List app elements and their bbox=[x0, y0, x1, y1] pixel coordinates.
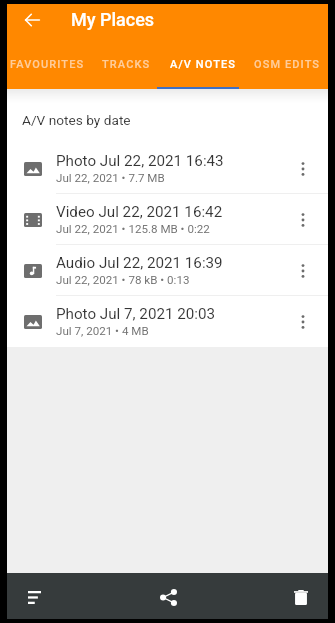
staticText: Jul 22, 2021 • 78 kB • 0:13 bbox=[56, 273, 190, 287]
button[interactable]: More options bbox=[277, 296, 328, 347]
button[interactable]: OSM EDITS bbox=[246, 58, 327, 88]
staticText: FAVOURITES bbox=[10, 58, 85, 71]
staticText: Jul 7, 2021 • 4 MB bbox=[56, 324, 149, 338]
staticText: Video Jul 22, 2021 16:42 bbox=[56, 203, 223, 221]
button[interactable]: More options bbox=[277, 143, 328, 194]
staticText: TRACKS bbox=[102, 58, 151, 71]
staticText: My Places bbox=[71, 9, 155, 30]
staticText: Photo Jul 22, 2021 16:43 bbox=[56, 152, 224, 170]
staticText: Photo Jul 7, 2021 20:03 bbox=[56, 305, 216, 323]
button[interactable]: More options bbox=[277, 245, 328, 296]
button[interactable]: TRACKS bbox=[94, 58, 162, 88]
button[interactable]: FAVOURITES bbox=[7, 58, 94, 88]
staticText: Jul 22, 2021 • 7.7 MB bbox=[56, 171, 165, 185]
button[interactable]: Sort bbox=[7, 576, 61, 619]
button[interactable]: Photo Jul 22, 2021 16:43 bbox=[7, 143, 328, 194]
staticText: Jul 22, 2021 • 125.8 MB • 0:22 bbox=[56, 222, 210, 236]
button[interactable]: Photo Jul 7, 2021 20:03 bbox=[7, 296, 328, 347]
button[interactable]: Video Jul 22, 2021 16:42 bbox=[7, 194, 328, 245]
button[interactable]: Share bbox=[141, 576, 195, 619]
staticText: A/V notes by date bbox=[22, 112, 131, 128]
staticText: A/V NOTES bbox=[170, 58, 237, 71]
button[interactable]: A/V NOTES bbox=[162, 58, 246, 88]
button[interactable]: Delete bbox=[274, 576, 328, 619]
button[interactable]: Back bbox=[17, 4, 48, 35]
staticText: Audio Jul 22, 2021 16:39 bbox=[56, 254, 223, 272]
button[interactable]: More options bbox=[277, 194, 328, 245]
button[interactable]: Audio Jul 22, 2021 16:39 bbox=[7, 245, 328, 296]
staticText: OSM EDITS bbox=[254, 58, 321, 71]
